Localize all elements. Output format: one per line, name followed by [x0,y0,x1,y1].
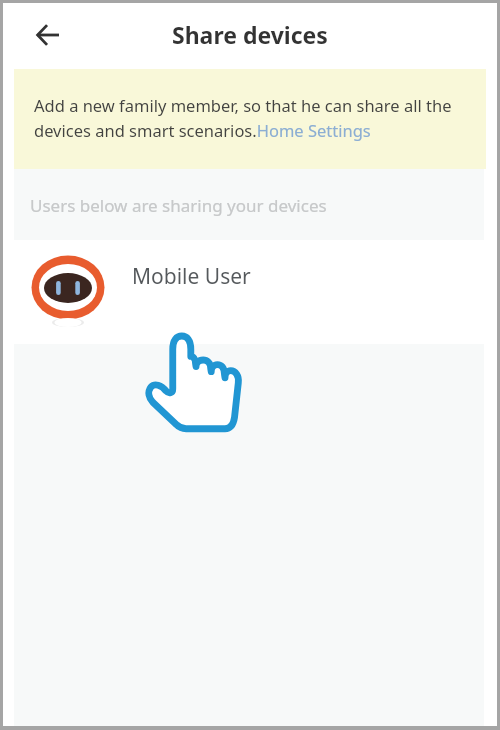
button[interactable]: Back [26,13,70,57]
button[interactable]: Mobile User [3,240,497,344]
staticText: Mobile User [132,262,251,291]
staticText: Share devices [172,19,328,50]
button[interactable]: Home Settings [248,118,360,142]
staticText: Add a new family member, so that he can … [34,94,471,142]
staticText: Users below are sharing your devices [30,194,327,217]
